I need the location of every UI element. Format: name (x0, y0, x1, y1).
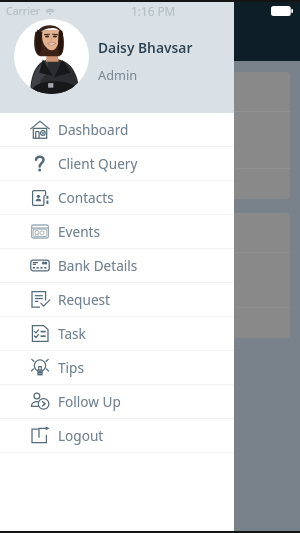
staticText: Request (58, 290, 110, 309)
staticText: Task (58, 324, 86, 343)
button[interactable]: Bank Details (0, 249, 234, 282)
staticText: Logout (58, 426, 104, 445)
button[interactable]: Contacts (0, 181, 234, 214)
button[interactable]: Dashboard (0, 113, 234, 146)
staticText: Client Query (58, 154, 138, 173)
staticText: Admin (98, 66, 138, 83)
staticText: Carrier (6, 4, 41, 18)
button[interactable]: Task (0, 317, 234, 350)
staticText: Daisy Bhavsar (98, 38, 193, 57)
button[interactable]: Client Query (0, 147, 234, 180)
staticText: Follow Up (58, 392, 121, 411)
button[interactable]: Request (0, 283, 234, 316)
staticText: Bank Details (58, 256, 138, 275)
button[interactable]: Events (0, 215, 234, 248)
button[interactable]: Follow Up (0, 385, 234, 418)
button[interactable]: Logout (0, 419, 234, 452)
staticText: 1:16 PM (131, 3, 176, 19)
staticText: Contacts (58, 188, 114, 207)
staticText: Dashboard (58, 120, 129, 139)
button[interactable]: Tips (0, 351, 234, 384)
staticText: Events (58, 222, 100, 241)
staticText: Tips (58, 358, 84, 377)
